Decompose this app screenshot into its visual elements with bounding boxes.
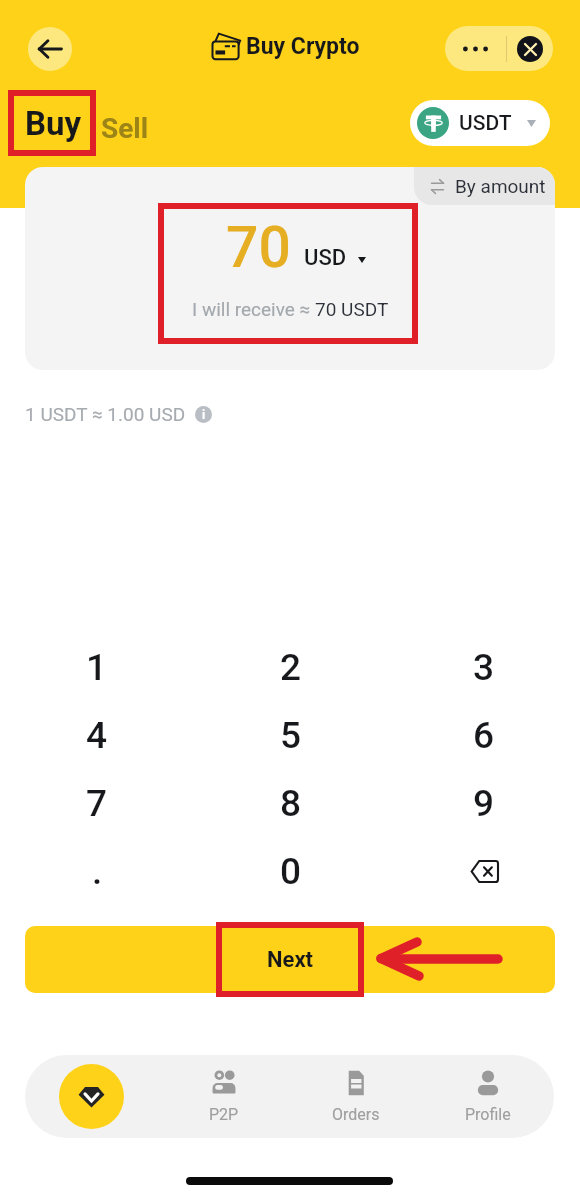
button[interactable]: 5	[194, 701, 387, 769]
staticText: Sell	[101, 112, 149, 145]
staticText: USD	[304, 245, 347, 271]
button[interactable]: .	[0, 837, 194, 905]
button[interactable]: Sell	[94, 106, 156, 151]
button[interactable]: USDT	[410, 100, 550, 146]
staticText: Buy Crypto	[246, 33, 360, 60]
staticText: P2P	[209, 1105, 239, 1124]
button[interactable]: Profile	[422, 1055, 554, 1138]
other: Backspace	[470, 861, 498, 882]
staticText: .	[92, 850, 103, 893]
staticText: 9	[473, 782, 495, 825]
button[interactable]: 3	[387, 633, 580, 701]
button[interactable]: Buy Crypto	[25, 1055, 158, 1138]
staticText: I will receive ≈	[192, 298, 315, 320]
button[interactable]: By amount	[414, 167, 555, 205]
button[interactable]: 8	[194, 769, 387, 837]
button[interactable]: 1	[0, 633, 194, 701]
button[interactable]: Buy	[18, 98, 89, 149]
staticText: USDT	[459, 111, 512, 136]
button[interactable]: 7	[0, 769, 194, 837]
staticText: 2	[280, 646, 302, 689]
button[interactable]: 4	[0, 701, 194, 769]
staticText: 4	[86, 714, 108, 757]
staticText: Buy	[25, 104, 82, 143]
staticText: 5	[280, 714, 302, 757]
staticText: 8	[280, 782, 302, 825]
staticText: 1	[86, 646, 108, 689]
staticText: 6	[473, 714, 495, 757]
staticText: 3	[473, 646, 495, 689]
button[interactable]: Close	[507, 26, 553, 71]
button[interactable]: 0	[194, 837, 387, 905]
staticText: 70 USDT	[315, 298, 389, 320]
button[interactable]: 6	[387, 701, 580, 769]
button[interactable]: P2P	[158, 1055, 290, 1138]
staticText: 7	[86, 782, 108, 825]
staticText: Orders	[332, 1105, 380, 1124]
button[interactable]: 2	[194, 633, 387, 701]
staticText: Next	[267, 947, 314, 973]
button[interactable]: More options	[445, 26, 506, 71]
staticText: i	[202, 408, 206, 422]
button[interactable]: Back	[28, 27, 72, 71]
staticText: 1 USDT ≈ 1.00 USD	[25, 403, 186, 425]
staticText: By amount	[455, 175, 546, 197]
staticText: 0	[280, 850, 302, 893]
staticText: Profile	[465, 1105, 511, 1124]
button[interactable]: Orders	[290, 1055, 422, 1138]
button[interactable]: Next	[25, 926, 555, 993]
staticText: 70	[226, 214, 291, 281]
button[interactable]: 9	[387, 769, 580, 837]
button[interactable]: Backspace	[387, 837, 580, 905]
